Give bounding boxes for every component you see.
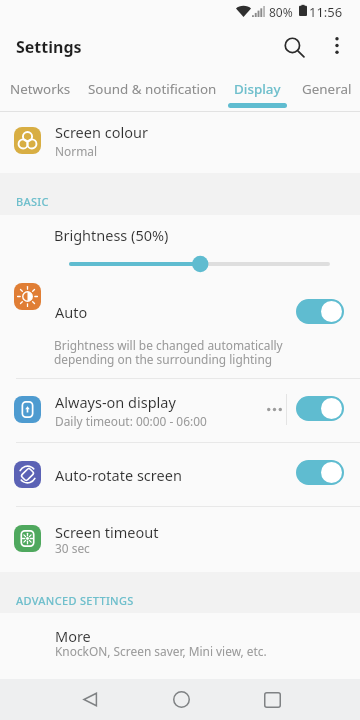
button[interactable]: Back xyxy=(60,679,120,720)
button[interactable]: Screen colour xyxy=(0,112,360,173)
button[interactable]: Sound & notification xyxy=(81,70,223,112)
staticText: Networks xyxy=(10,80,71,98)
staticText: 30 sec xyxy=(55,540,90,556)
staticText: General xyxy=(302,80,352,98)
staticText: ADVANCED SETTINGS xyxy=(16,593,134,608)
staticText: Auto-rotate screen xyxy=(55,465,182,485)
button[interactable]: Toggle on xyxy=(296,299,344,324)
staticText: Screen colour xyxy=(55,122,148,142)
button[interactable]: Auto xyxy=(0,283,360,329)
staticText: BASIC xyxy=(16,194,49,209)
staticText: Brightness (50%) xyxy=(54,225,169,245)
button[interactable]: Screen timeout xyxy=(0,507,360,572)
button[interactable]: Auto-rotate screen xyxy=(0,443,360,506)
staticText: Display xyxy=(234,80,281,98)
staticText: Normal xyxy=(55,143,97,159)
staticText: 11:56 xyxy=(309,3,343,21)
button[interactable]: More options xyxy=(256,391,292,427)
staticText: More xyxy=(55,626,91,646)
button[interactable]: General xyxy=(291,70,360,112)
button[interactable]: Toggle on xyxy=(296,396,344,421)
staticText: Sound & notification xyxy=(88,80,217,98)
staticText: Always-on display xyxy=(55,392,176,412)
button[interactable]: Brightness slider xyxy=(59,253,341,275)
staticText: Screen timeout xyxy=(55,522,159,542)
staticText: Settings xyxy=(16,36,82,58)
staticText: KnockON, Screen saver, Mini view, etc. xyxy=(55,643,267,659)
button[interactable]: Always-on display xyxy=(0,379,360,442)
button[interactable]: Display xyxy=(223,70,291,112)
staticText: 80% xyxy=(269,4,293,20)
button[interactable]: More xyxy=(0,613,360,679)
staticText: depending on the surrounding lighting xyxy=(54,351,273,367)
button[interactable]: Home xyxy=(151,679,211,720)
button[interactable]: Search xyxy=(272,25,316,69)
staticText: Auto xyxy=(55,302,88,322)
staticText: Daily timeout: 00:00 - 06:00 xyxy=(55,413,207,429)
staticText: Brightness will be changed automatically xyxy=(54,337,283,353)
button[interactable]: Recents xyxy=(242,679,302,720)
button[interactable]: Networks xyxy=(0,70,81,112)
button[interactable]: More options xyxy=(317,25,357,65)
button[interactable]: Toggle on xyxy=(296,460,344,485)
